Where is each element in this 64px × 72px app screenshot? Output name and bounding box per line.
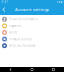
button[interactable]: Home [21,67,43,72]
button[interactable]: Privacy & security [0,36,64,42]
staticText: Account settings [15,7,49,12]
staticText: Help and feedback [9,44,35,47]
staticText: Privacy & security [9,37,31,41]
button[interactable]: Back [0,67,21,72]
button[interactable]: Help and feedback [0,42,64,49]
button[interactable]: Personal information [0,16,64,23]
staticText: Payments [9,24,21,28]
button[interactable]: Alerts [0,29,64,36]
staticText: 9:41 [1,0,8,4]
staticText: Personal information [9,17,38,21]
staticText: Alerts [9,31,17,34]
button[interactable]: Back [0,4,8,15]
button[interactable]: Recent apps [43,67,64,72]
button[interactable]: Payments [0,23,64,29]
